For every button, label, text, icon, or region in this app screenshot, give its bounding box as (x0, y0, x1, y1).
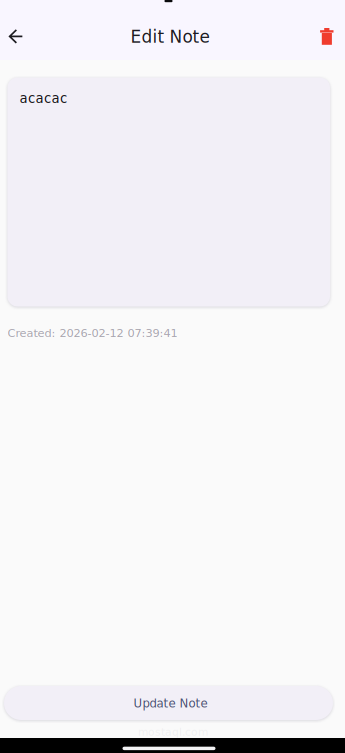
staticText: mostaql.com (138, 726, 208, 738)
button[interactable]: Back (0, 14, 33, 58)
button[interactable]: Delete note (311, 14, 343, 58)
staticText: Created: 2026-02-12 07:39:41 (7, 326, 177, 340)
staticText: Edit Note (130, 27, 209, 47)
staticText: acacac (19, 90, 67, 106)
button[interactable]: Update Note (4, 686, 333, 720)
staticText: Update Note (133, 697, 207, 710)
